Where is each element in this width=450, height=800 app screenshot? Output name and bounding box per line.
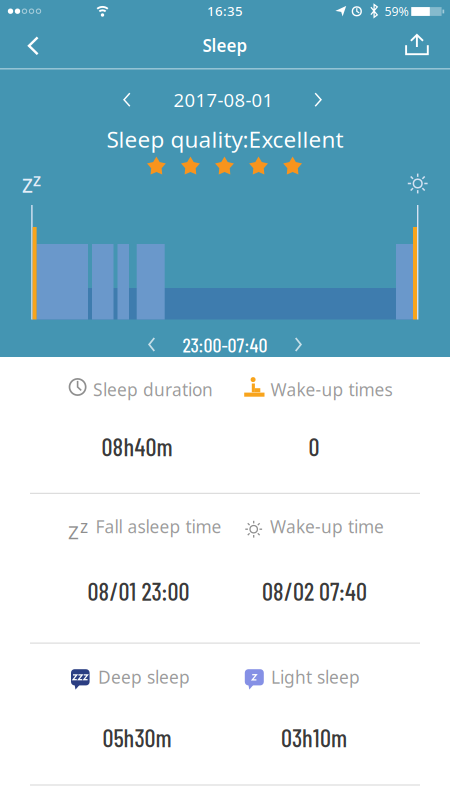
button[interactable] [131, 324, 171, 364]
staticText: Z [22, 173, 33, 198]
staticText: Sleep quality:Excellent [106, 124, 343, 154]
staticText: 03h10m [281, 723, 347, 752]
staticText: Light sleep [271, 665, 360, 689]
staticText: 2017-08-01 [173, 87, 273, 112]
staticText: Fall asleep time [95, 515, 221, 538]
staticText: Deep sleep [98, 665, 190, 689]
staticText: 08/01 23:00 [87, 576, 189, 606]
button[interactable] [298, 80, 338, 120]
staticText: 59% [384, 3, 408, 20]
staticText: Wake-up time [270, 515, 384, 538]
staticText: Sleep duration [93, 378, 213, 401]
button[interactable] [395, 23, 439, 67]
staticText: 05h30m [102, 723, 171, 752]
staticText: 23:00-07:40 [182, 332, 267, 356]
staticText: 08h40m [101, 432, 172, 461]
staticText: z [33, 167, 41, 191]
button[interactable] [107, 80, 147, 120]
staticText: Sleep [202, 34, 247, 57]
staticText: z [80, 514, 88, 538]
staticText: Wake-up times [270, 378, 392, 401]
button[interactable] [278, 324, 318, 364]
staticText: Z [68, 519, 79, 545]
staticText: 0 [308, 432, 319, 461]
staticText: 08/02 07:40 [262, 576, 367, 606]
button[interactable] [11, 24, 55, 68]
staticText: 16:35 [207, 2, 243, 20]
